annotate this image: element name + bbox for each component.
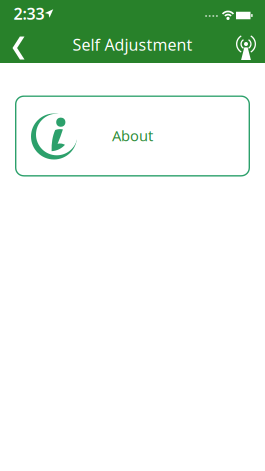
- button[interactable]: About: [15, 95, 250, 176]
- staticText: 2:33: [13, 3, 44, 24]
- button[interactable]: Broadcast: [228, 29, 264, 66]
- staticText: Self Adjustment: [72, 34, 192, 55]
- staticText: About: [112, 126, 153, 145]
- button[interactable]: Back: [0, 28, 38, 67]
